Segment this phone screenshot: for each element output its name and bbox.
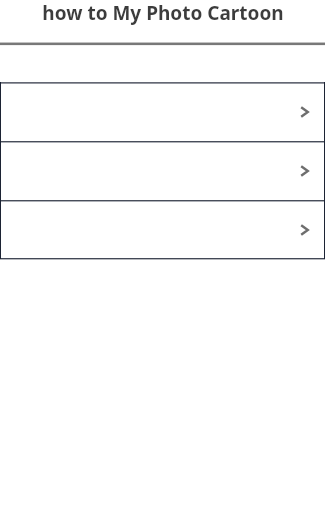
staticText: how to My Photo Cartoon	[42, 0, 284, 26]
button[interactable]: List item 2	[0, 141, 325, 200]
button[interactable]: List item 3	[0, 200, 325, 259]
button[interactable]: List item 1	[0, 82, 325, 141]
